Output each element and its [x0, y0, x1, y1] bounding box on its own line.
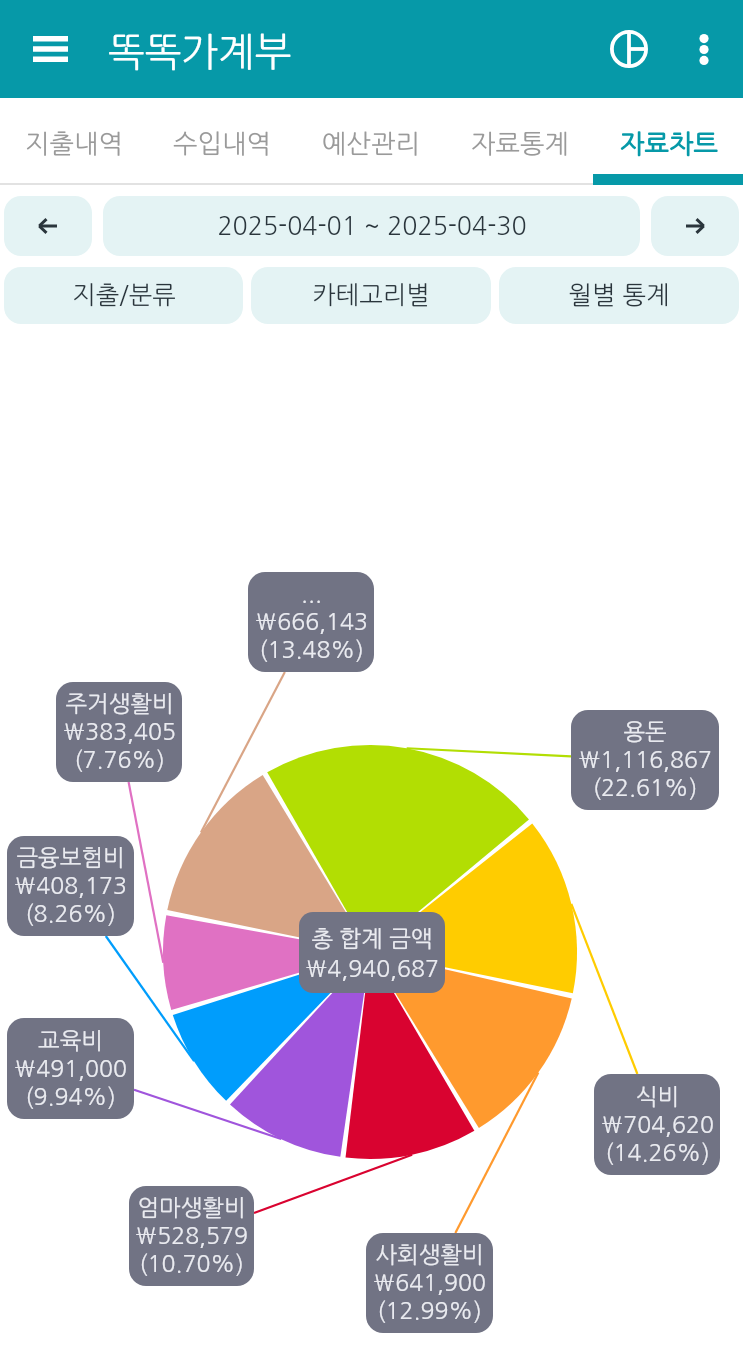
button[interactable]: 지출내역 [0, 98, 148, 185]
button[interactable]: More options [671, 16, 737, 82]
staticText: 지출내역 [25, 131, 123, 157]
button[interactable]: 자료통계 [445, 98, 594, 185]
button[interactable]: 사회생활비 ₩641,900 (12.99%) [366, 1233, 493, 1333]
button[interactable]: 예산관리 [296, 98, 445, 185]
staticText: 총 합계 금액 ₩4,940,687 [305, 923, 439, 983]
button[interactable]: 총 합계 금액 ₩4,940,687 [299, 912, 445, 993]
staticText: 2025-04-01 ~ 2025-04-30 [217, 214, 527, 239]
button[interactable]: Next period [651, 196, 739, 256]
staticText: 지출/분류 [72, 283, 176, 308]
staticText: 금융보험비 ₩408,173 (8.26%) [14, 844, 127, 928]
button[interactable]: Previous period [4, 196, 92, 256]
button[interactable]: 용돈 ₩1,116,867 (22.61%) [571, 710, 719, 810]
button[interactable]: 금융보험비 ₩408,173 (8.26%) [7, 836, 134, 936]
button[interactable]: 엄마생활비 ₩528,579 (10.70%) [129, 1186, 254, 1286]
staticText: 교육비 ₩491,000 (9.94%) [14, 1027, 127, 1111]
button[interactable]: 카테고리별 [251, 267, 491, 324]
button[interactable]: 월별 통계 [499, 267, 739, 324]
staticText: 용돈 ₩1,116,867 (22.61%) [578, 718, 712, 802]
button[interactable]: Chart view [597, 17, 661, 81]
staticText: 엄마생활비 ₩528,579 (10.70%) [135, 1194, 248, 1278]
staticText: ... ₩666,143 (13.48%) [255, 580, 368, 664]
button[interactable]: 지출/분류 [4, 267, 243, 324]
staticText: 식비 ₩704,620 (14.26%) [601, 1083, 714, 1167]
staticText: 카테고리별 [312, 283, 430, 308]
staticText: 예산관리 [322, 131, 420, 157]
button[interactable]: Open navigation menu [16, 15, 84, 83]
button[interactable]: 주거생활비 ₩383,405 (7.76%) [56, 682, 182, 782]
button[interactable]: ... ₩666,143 (13.48%) [248, 572, 374, 672]
staticText: 자료통계 [471, 131, 569, 157]
button[interactable]: 교육비 ₩491,000 (9.94%) [7, 1018, 134, 1119]
button[interactable]: 자료차트 [594, 98, 743, 185]
staticText: 똑똑가계부 [108, 33, 292, 72]
staticText: 사회생활비 ₩641,900 (12.99%) [373, 1241, 486, 1325]
button[interactable]: 수입내역 [148, 98, 296, 185]
staticText: 주거생활비 ₩383,405 (7.76%) [63, 690, 176, 774]
staticText: 수입내역 [173, 131, 271, 157]
staticText: 자료차트 [620, 131, 718, 157]
button[interactable]: 2025-04-01 ~ 2025-04-30 [103, 196, 640, 256]
staticText: 월별 통계 [568, 283, 670, 308]
button[interactable]: 식비 ₩704,620 (14.26%) [594, 1074, 720, 1175]
